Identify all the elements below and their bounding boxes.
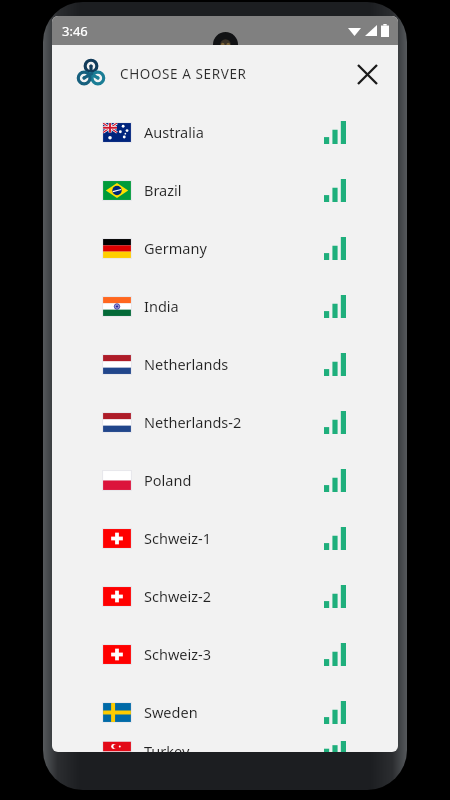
button[interactable]: Schweiz-1 [52,509,398,567]
staticText: Netherlands-2 [144,412,242,432]
staticText: Poland [144,470,192,490]
button[interactable]: Schweiz-3 [52,625,398,683]
staticText: Schweiz-3 [144,644,211,664]
staticText: CHOOSE A SERVER [120,65,247,83]
button[interactable]: Germany [52,219,398,277]
button[interactable]: Close [350,57,384,91]
staticText: India [144,296,179,316]
button[interactable]: Turkey [52,741,398,752]
button[interactable]: Poland [52,451,398,509]
button[interactable]: India [52,277,398,335]
staticText: Schweiz-1 [144,528,211,548]
staticText: Australia [144,122,204,142]
staticText: Sweden [144,702,198,722]
staticText: Germany [144,238,207,258]
button[interactable]: Netherlands [52,335,398,393]
staticText: Brazil [144,180,182,200]
staticText: Turkey [144,741,190,752]
button[interactable]: Netherlands-2 [52,393,398,451]
staticText: Schweiz-2 [144,586,211,606]
button[interactable]: Australia [52,103,398,161]
staticText: Netherlands [144,354,229,374]
staticText: 3:46 [62,22,88,40]
button[interactable]: Sweden [52,683,398,741]
button[interactable]: Brazil [52,161,398,219]
button[interactable]: Schweiz-2 [52,567,398,625]
